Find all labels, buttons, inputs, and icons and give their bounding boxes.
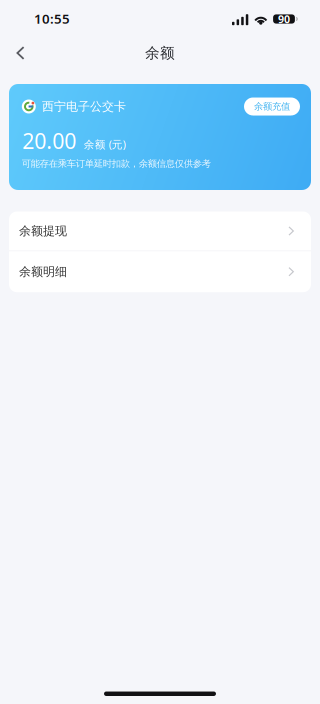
staticText: 20.00 bbox=[22, 126, 76, 155]
staticText: 余额充值 bbox=[254, 101, 290, 112]
button[interactable]: 余额充值 bbox=[244, 97, 300, 115]
button[interactable]: 余额提现 bbox=[9, 211, 311, 250]
button[interactable]: 余额明细 bbox=[9, 251, 311, 292]
button[interactable]: Back bbox=[1, 36, 39, 70]
staticText: 余额 bbox=[145, 44, 175, 62]
staticText: 90 bbox=[278, 12, 290, 26]
staticText: 西宁电子公交卡 bbox=[42, 99, 126, 114]
staticText: 余额 (元) bbox=[84, 137, 126, 151]
staticText: 可能存在乘车订单延时扣款，余额信息仅供参考 bbox=[22, 158, 211, 169]
staticText: 10:55 bbox=[34, 10, 70, 27]
staticText: 余额明细 bbox=[19, 264, 67, 279]
staticText: 余额提现 bbox=[19, 224, 67, 238]
